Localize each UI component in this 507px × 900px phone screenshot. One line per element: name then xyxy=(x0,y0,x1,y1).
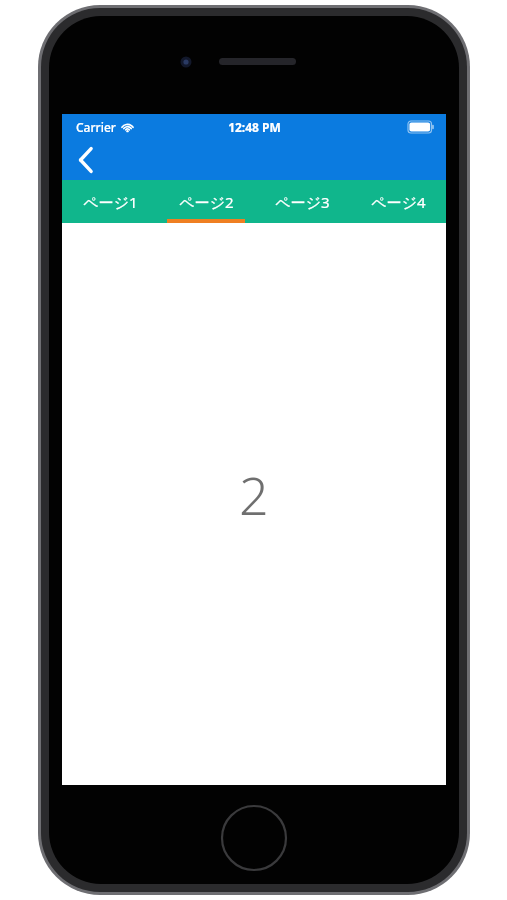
staticText: Carrier xyxy=(76,119,116,135)
button[interactable]: Back xyxy=(62,140,110,180)
button[interactable]: ページ3 xyxy=(254,180,350,223)
button[interactable]: ページ4 xyxy=(350,180,446,223)
staticText: 12:48 PM xyxy=(228,119,281,135)
staticText: ページ3 xyxy=(275,192,330,212)
button[interactable]: ページ2 xyxy=(158,180,254,223)
staticText: 2 xyxy=(239,459,269,530)
staticText: ページ1 xyxy=(83,192,138,212)
staticText: ページ2 xyxy=(179,192,234,212)
staticText: ページ4 xyxy=(371,192,426,212)
button[interactable]: ページ1 xyxy=(62,180,158,223)
